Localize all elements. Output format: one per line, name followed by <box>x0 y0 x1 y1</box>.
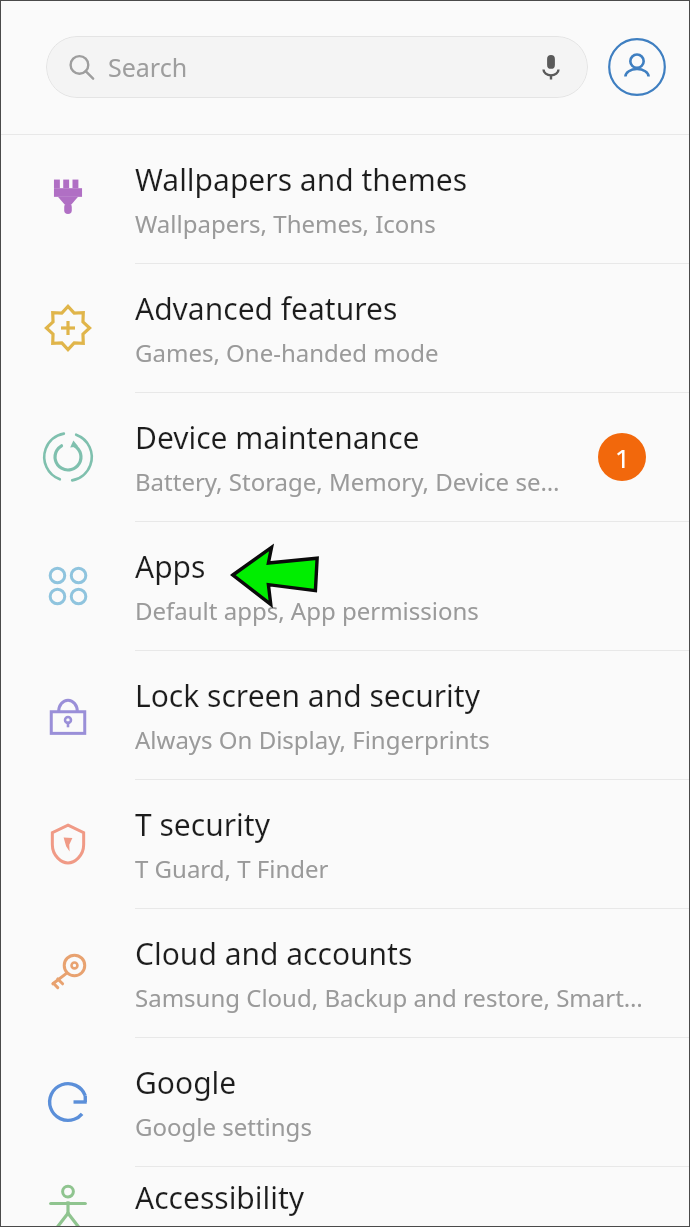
staticText: Cloud and accounts <box>135 933 413 974</box>
button[interactable]: Accessibility <box>0 1167 690 1227</box>
button[interactable]: Wallpapers and themes <box>0 135 690 263</box>
staticText: Default apps, App permissions <box>135 594 479 627</box>
staticText: Device maintenance <box>135 417 420 458</box>
button[interactable]: Lock screen and security <box>0 651 690 779</box>
staticText: Battery, Storage, Memory, Device se… <box>135 465 560 498</box>
staticText: Apps <box>135 546 206 587</box>
staticText: Search <box>108 50 188 84</box>
staticText: 1 <box>615 440 630 475</box>
button[interactable]: Google <box>0 1038 690 1166</box>
staticText: Always On Display, Fingerprints <box>135 723 490 756</box>
button[interactable]: T security <box>0 780 690 908</box>
button[interactable]: Search <box>46 36 588 98</box>
staticText: Wallpapers and themes <box>135 159 468 200</box>
staticText: Lock screen and security <box>135 675 480 716</box>
button[interactable]: Voice search <box>534 50 568 84</box>
staticText: T Guard, T Finder <box>135 852 329 885</box>
button[interactable]: Apps <box>0 522 690 650</box>
staticText: Games, One-handed mode <box>135 336 439 369</box>
staticText: Google <box>135 1062 237 1103</box>
staticText: Accessibility <box>135 1177 305 1218</box>
staticText: T security <box>135 804 270 845</box>
staticText: Google settings <box>135 1110 312 1143</box>
staticText: Samsung Cloud, Backup and restore, Smart… <box>135 981 643 1014</box>
button[interactable]: Device maintenance <box>0 393 690 521</box>
button[interactable]: Advanced features <box>0 264 690 392</box>
staticText: Advanced features <box>135 288 398 329</box>
button[interactable]: Cloud and accounts <box>0 909 690 1037</box>
button[interactable]: Account <box>606 36 668 98</box>
staticText: Wallpapers, Themes, Icons <box>135 207 436 240</box>
